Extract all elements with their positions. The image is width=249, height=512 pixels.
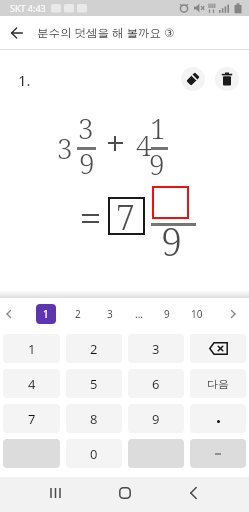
button[interactable]: ...	[127, 302, 151, 326]
staticText: 7	[116, 194, 136, 240]
staticText: 2	[90, 340, 98, 358]
button[interactable]: 9	[155, 302, 179, 326]
button[interactable]	[190, 334, 246, 363]
staticText: 9	[149, 145, 165, 183]
staticText: 1	[150, 109, 166, 147]
staticText: 3	[57, 129, 73, 167]
button[interactable]	[190, 439, 246, 468]
staticText: 9	[79, 144, 95, 182]
staticText: 3	[107, 307, 113, 321]
button[interactable]	[0, 305, 18, 323]
staticText: 2	[75, 307, 81, 321]
staticText: 4	[28, 375, 36, 393]
button[interactable]: 3	[128, 334, 184, 363]
staticText: 다음	[207, 377, 229, 391]
staticText: SKT 4:43	[10, 2, 46, 14]
staticText: 9	[161, 215, 183, 267]
button[interactable]: 10	[185, 302, 209, 326]
staticText: 7	[28, 410, 36, 428]
button[interactable]	[224, 305, 242, 323]
button[interactable]: 0	[66, 439, 122, 468]
staticText: 3	[78, 109, 94, 147]
button[interactable]	[0, 16, 33, 49]
button[interactable]	[181, 67, 205, 91]
button[interactable]: 4	[3, 369, 60, 398]
button[interactable]	[215, 67, 239, 91]
button[interactable]: 1	[36, 304, 56, 324]
button[interactable]: 다음	[190, 369, 246, 398]
staticText: 1.	[18, 70, 31, 90]
button[interactable]: 9	[128, 404, 184, 433]
staticText: 10	[191, 307, 203, 321]
button[interactable]	[40, 477, 71, 508]
button[interactable]	[178, 477, 209, 508]
staticText: 8	[90, 410, 98, 428]
button[interactable]	[109, 477, 140, 508]
button[interactable]: 7	[3, 404, 60, 433]
staticText: 분수의 덧셈을 해 볼까요 ③	[37, 25, 175, 41]
button[interactable]: 6	[128, 369, 184, 398]
button[interactable]: 3	[98, 302, 122, 326]
button[interactable]: 2	[66, 302, 90, 326]
button[interactable]: 8	[66, 404, 122, 433]
staticText: 4	[136, 126, 152, 164]
staticText: 1	[43, 307, 49, 321]
button[interactable]: 1	[3, 334, 60, 363]
button[interactable]: 2	[66, 334, 122, 363]
staticText: 6	[152, 375, 160, 393]
staticText: ...	[135, 307, 144, 321]
button[interactable]: 5	[66, 369, 122, 398]
staticText: 1	[28, 340, 36, 358]
staticText: 9	[164, 307, 170, 321]
staticText: 9	[152, 410, 160, 428]
staticText: 0	[90, 445, 98, 463]
staticText: 5	[90, 375, 98, 393]
staticText: 3	[152, 340, 160, 358]
button[interactable]	[190, 404, 246, 433]
